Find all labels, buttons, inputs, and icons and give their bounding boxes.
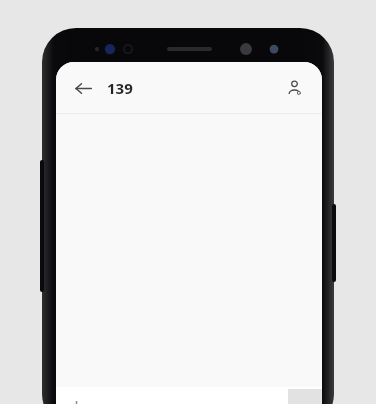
- staticText: 139: [107, 78, 133, 98]
- button[interactable]: Add person: [280, 73, 310, 103]
- button[interactable]: Back: [68, 73, 98, 103]
- button[interactable]: Add attachment: [62, 394, 90, 404]
